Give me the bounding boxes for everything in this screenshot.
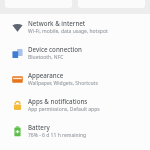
staticText: Appearance: [28, 71, 64, 79]
button[interactable]: Appearance: [0, 66, 150, 92]
staticText: Network & internet: [28, 19, 86, 27]
other: Battery: [12, 126, 23, 137]
staticText: Wallpaper, Widgets, Shortcuts: [28, 80, 98, 87]
staticText: Device connection: [28, 45, 82, 53]
other: Appearance: [12, 74, 23, 85]
other: Network and internet: [12, 22, 23, 33]
button[interactable]: Device connection: [0, 40, 150, 66]
staticText: Apps & notifications: [28, 97, 88, 105]
button[interactable]: Apps and notifications: [0, 92, 150, 118]
staticText: Battery: [28, 123, 50, 131]
staticText: Wi-Fi, mobile, data usage, hotspot: [28, 28, 108, 35]
button[interactable]: Network and internet: [0, 14, 150, 40]
staticText: App permissions, Default apps: [28, 106, 100, 113]
staticText: Bluetooth, NFC: [28, 54, 64, 61]
staticText: 76% - 6 d 11 h remaining: [28, 132, 87, 139]
other: Apps and notifications: [12, 100, 23, 111]
other: Device connection: [12, 48, 23, 59]
button[interactable]: Battery: [0, 118, 150, 144]
